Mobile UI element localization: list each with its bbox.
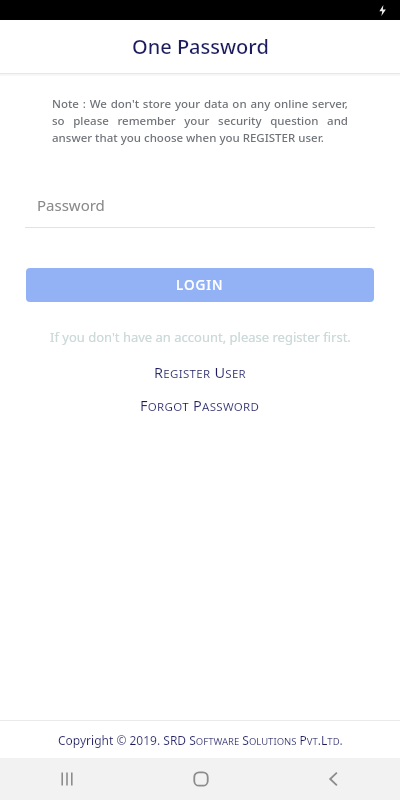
button[interactable]: Back [267, 758, 400, 800]
staticText: Password [37, 195, 105, 215]
staticText: LOGIN [176, 276, 224, 294]
button[interactable]: LOGIN [26, 268, 374, 302]
button[interactable]: Password [25, 191, 375, 228]
button[interactable]: REGISTER USER [0, 362, 400, 382]
staticText: REGISTER USER [154, 362, 247, 382]
button[interactable]: FORGOT PASSWORD [0, 395, 400, 415]
staticText: One Password [132, 33, 269, 60]
button[interactable]: Recent apps [0, 758, 134, 800]
staticText: Copyright © 2019. SRD SOFTWARE SOLUTIONS… [58, 732, 343, 748]
staticText: FORGOT PASSWORD [140, 395, 260, 415]
button[interactable]: Home [134, 758, 267, 800]
staticText: If you don't have an account, please reg… [50, 328, 351, 346]
staticText: Note : We don't store your data on any o… [52, 96, 348, 146]
